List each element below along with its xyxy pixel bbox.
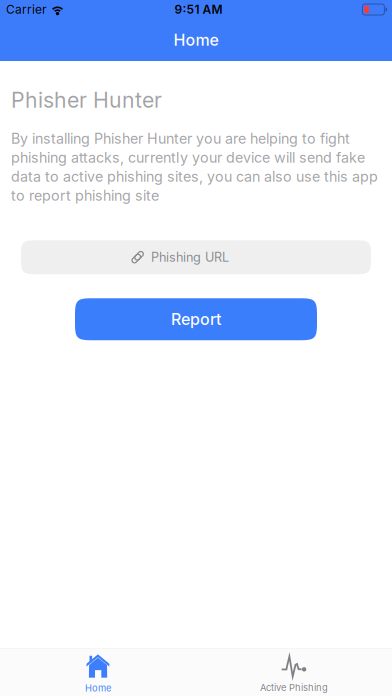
staticText: Home <box>85 682 111 694</box>
staticText: Phishing URL <box>151 250 229 265</box>
button[interactable]: Phishing URL <box>21 240 371 274</box>
staticText: Phisher Hunter <box>11 87 162 113</box>
staticText: By installing Phisher Hunter you are hel… <box>11 130 378 204</box>
button[interactable]: Report <box>75 298 317 340</box>
staticText: Report <box>171 310 221 329</box>
staticText: Active Phishing <box>260 682 328 693</box>
staticText: Carrier <box>6 2 47 17</box>
button[interactable]: Active Phishing <box>196 649 392 696</box>
button[interactable]: Home <box>0 649 196 696</box>
staticText: 9:51 AM <box>174 2 222 17</box>
staticText: Home <box>173 30 218 50</box>
